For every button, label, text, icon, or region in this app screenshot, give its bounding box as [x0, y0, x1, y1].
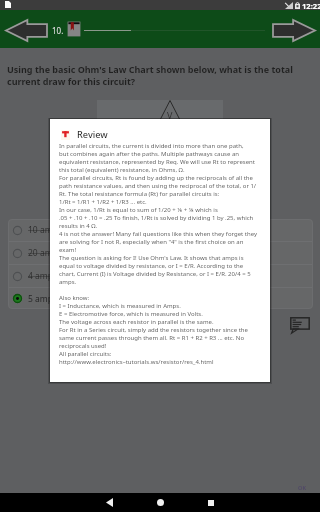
- button[interactable]: 5 amps: [8, 288, 313, 309]
- button[interactable]: Recent apps: [191, 493, 231, 512]
- button[interactable]: Next question: [272, 19, 316, 42]
- staticText: Using the basic Ohm's Law Chart shown be…: [7, 63, 293, 87]
- button[interactable]: Home: [140, 493, 180, 512]
- button[interactable]: 10 amps: [8, 219, 313, 241]
- staticText: V: [167, 109, 173, 121]
- button[interactable]: OK: [291, 480, 313, 496]
- staticText: 10.: [52, 25, 64, 36]
- staticText: In parallel circuits, the current is div…: [59, 142, 257, 366]
- button[interactable]: Bookmark: [67, 21, 81, 37]
- staticText: 10 amps: [28, 224, 62, 236]
- button[interactable]: Previous question: [5, 19, 48, 42]
- button[interactable]: Comments: [290, 317, 310, 334]
- staticText: OK: [298, 484, 306, 492]
- staticText: 12:22: [302, 1, 320, 11]
- staticText: Review: [77, 128, 108, 141]
- staticText: 5 amps: [28, 293, 58, 305]
- staticText: 20 amps: [28, 247, 62, 259]
- button[interactable]: 20 amps: [8, 242, 313, 264]
- button[interactable]: 4 amps: [8, 265, 313, 287]
- button[interactable]: Back: [89, 493, 129, 512]
- staticText: 4 amps: [28, 270, 58, 282]
